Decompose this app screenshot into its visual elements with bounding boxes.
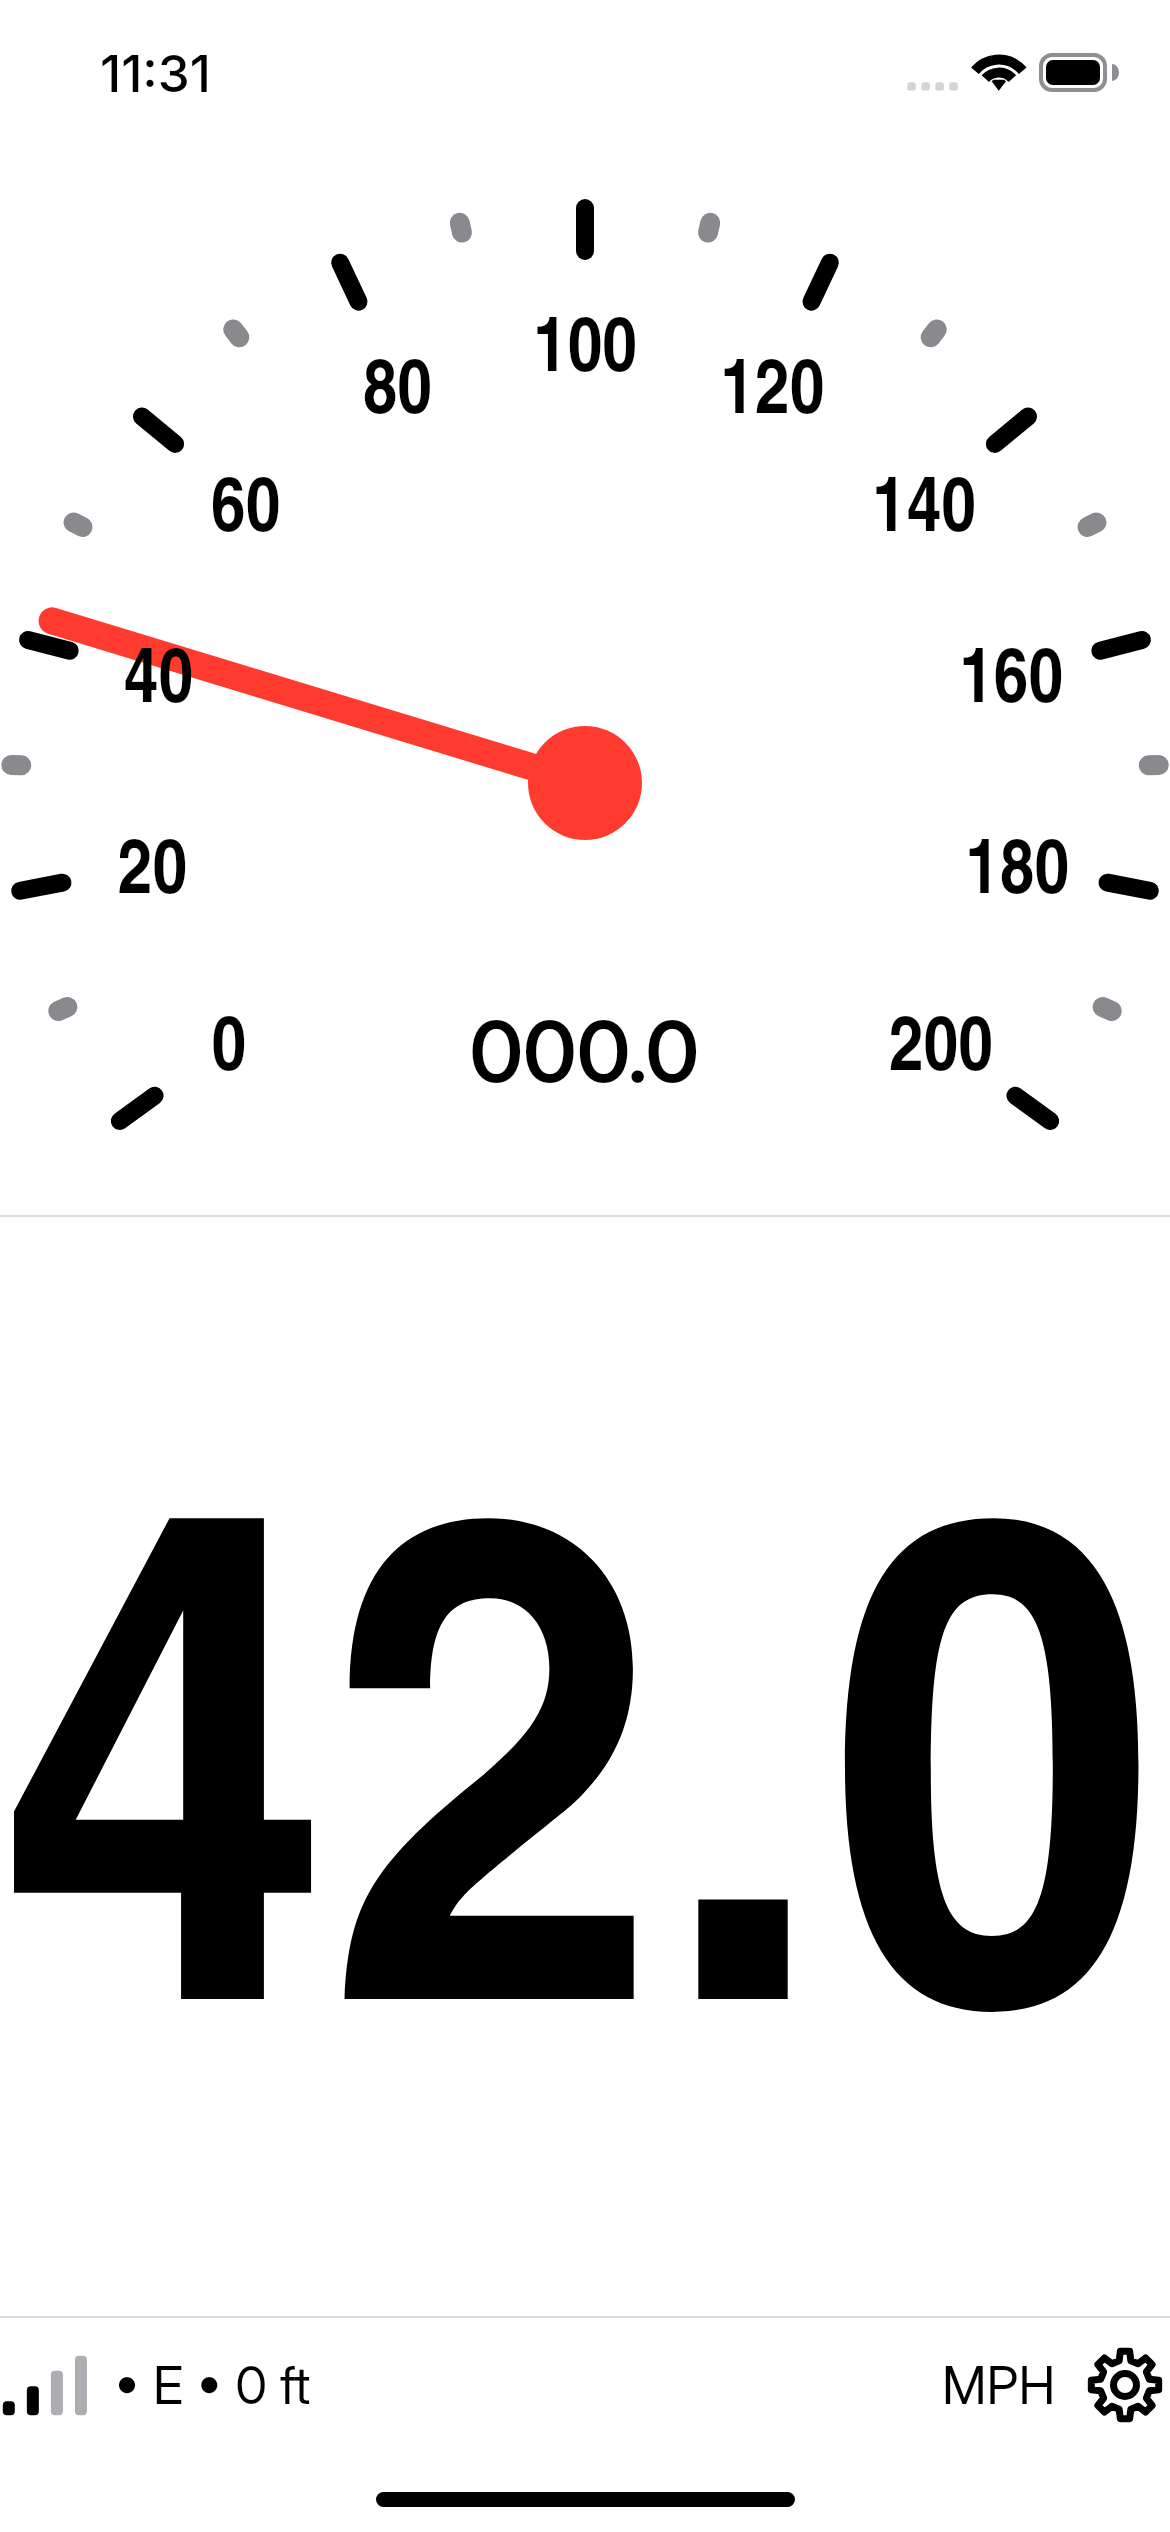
button[interactable]: Settings xyxy=(1076,2336,1170,2434)
